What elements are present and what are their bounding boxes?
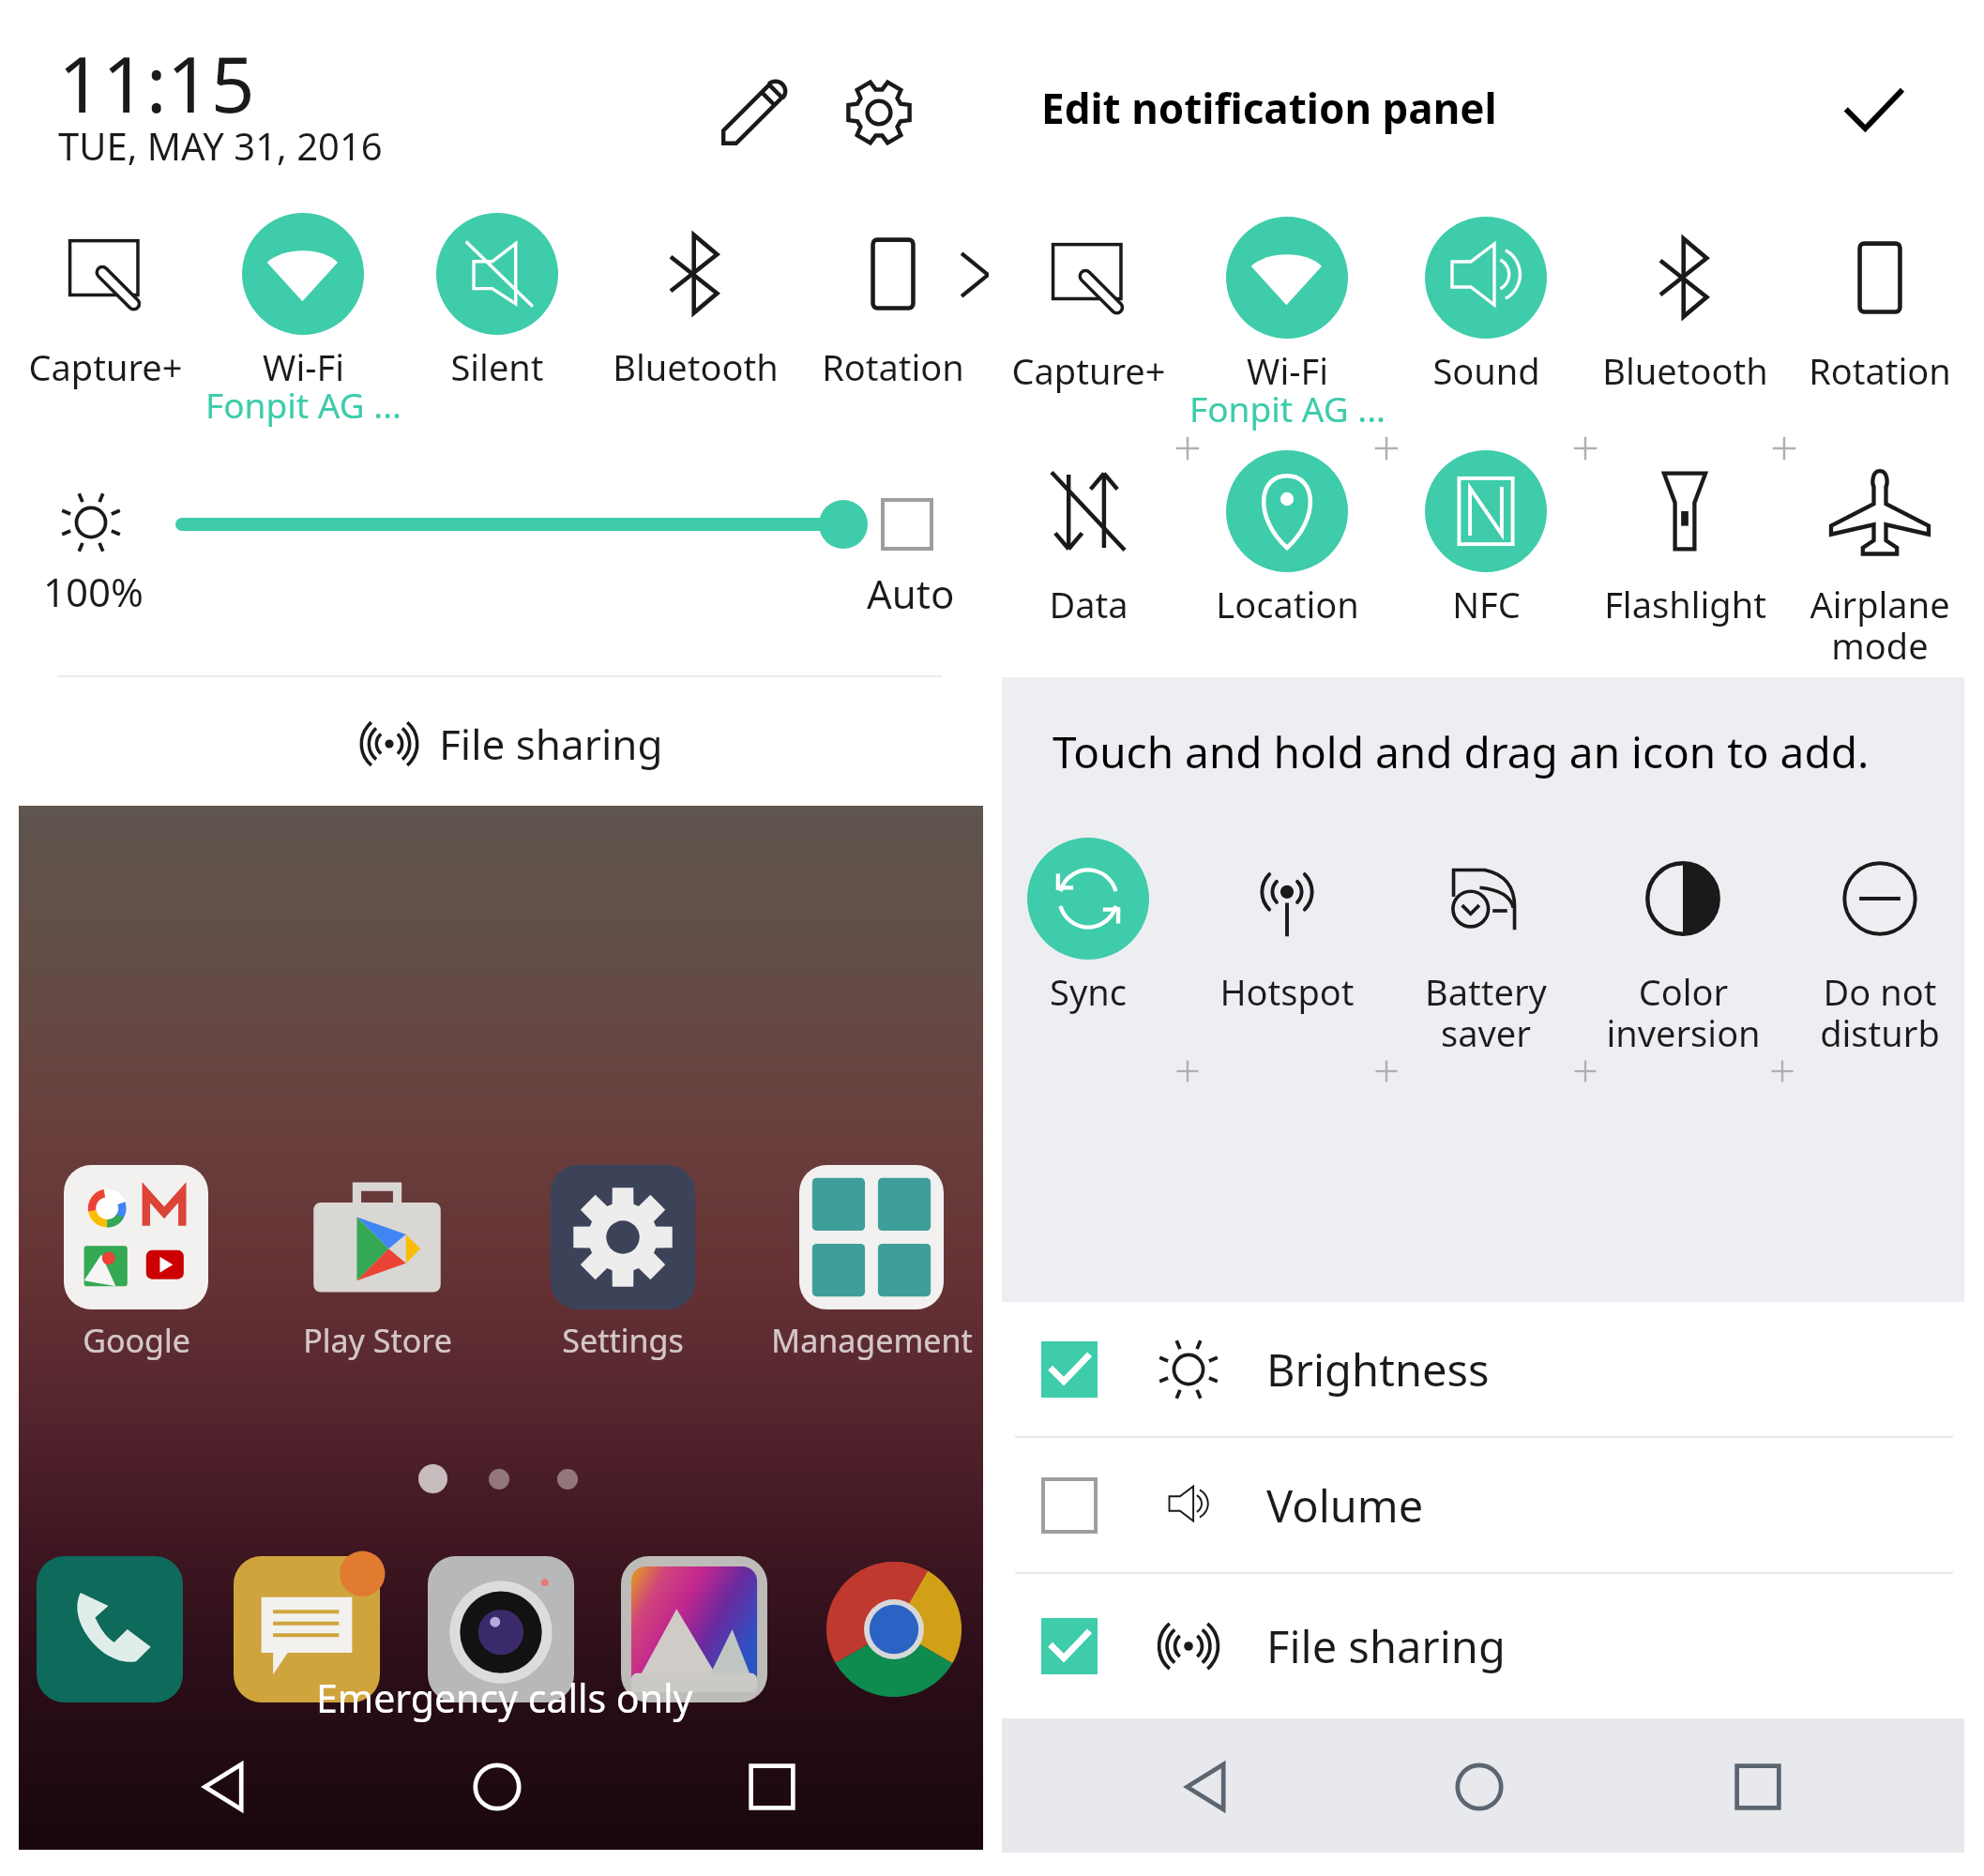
button[interactable]: Home	[1439, 1747, 1520, 1827]
staticText: Fonpit AG ...	[205, 381, 401, 428]
button[interactable]: Back	[1167, 1747, 1248, 1827]
staticText: Management	[771, 1319, 973, 1362]
button[interactable]: Done	[1833, 71, 1914, 152]
button[interactable]: Silent	[356, 213, 638, 391]
staticText: Rotation	[1809, 346, 1951, 395]
button[interactable]: Auto brightness	[881, 498, 933, 551]
staticText: Data	[1049, 580, 1128, 628]
staticText: Edit notification panel	[1041, 80, 1497, 136]
button[interactable]: Wi-Fi	[1146, 217, 1428, 442]
button[interactable]: Rotation	[1739, 217, 1984, 395]
button[interactable]: Do not disturb	[1739, 838, 1984, 1057]
staticText: Do not disturb	[1820, 967, 1940, 1057]
staticText: Rotation	[822, 342, 964, 391]
button[interactable]: Camera	[428, 1556, 574, 1702]
button[interactable]: Expand quick settings	[938, 239, 1009, 310]
button[interactable]: File sharing	[356, 708, 663, 779]
button[interactable]: Wi-Fi	[162, 213, 444, 438]
staticText: Location	[1216, 580, 1359, 628]
button[interactable]: Volume	[989, 1437, 1978, 1573]
staticText: Volume	[1266, 1475, 1424, 1536]
staticText: Auto	[867, 567, 955, 620]
staticText: File sharing	[439, 716, 663, 772]
staticText: Sync	[1050, 967, 1127, 1016]
button[interactable]: Bluetooth	[554, 213, 836, 391]
staticText: Settings	[562, 1319, 684, 1362]
staticText: Hotspot	[1219, 967, 1355, 1016]
button[interactable]: Chrome	[821, 1556, 967, 1702]
button[interactable]: Phone	[37, 1556, 183, 1702]
button[interactable]: Recents	[732, 1747, 812, 1827]
staticText: Flashlight	[1604, 580, 1766, 628]
button[interactable]: File sharing	[989, 1573, 1978, 1719]
button[interactable]: Management	[703, 1165, 1040, 1362]
button[interactable]: Sync	[947, 838, 1229, 1016]
button[interactable]: Gallery	[621, 1556, 767, 1702]
button[interactable]: Recents	[1718, 1747, 1798, 1827]
button[interactable]: Messages	[234, 1556, 380, 1702]
staticText: Google	[83, 1319, 190, 1362]
button[interactable]: Brightness	[989, 1302, 1978, 1437]
staticText: Play Store	[303, 1319, 452, 1362]
button[interactable]: Play Store	[208, 1165, 546, 1362]
staticText: Capture+	[1011, 346, 1166, 395]
button[interactable]: Capture+	[0, 213, 246, 391]
button[interactable]: Google	[0, 1165, 305, 1362]
button[interactable]: Sound	[1345, 217, 1627, 395]
button[interactable]: Flashlight	[1544, 450, 1825, 628]
staticText: Emergency calls only	[316, 1672, 693, 1724]
button[interactable]: Data	[947, 450, 1229, 628]
staticText: File sharing	[1266, 1616, 1506, 1676]
staticText: TUE, MAY 31, 2016	[58, 120, 383, 171]
button[interactable]: Settings	[454, 1165, 792, 1362]
staticText: Fonpit AG ...	[1189, 385, 1386, 431]
staticText: Wi-Fi	[263, 342, 344, 391]
button[interactable]: NFC	[1345, 450, 1627, 628]
button[interactable]: Rotation	[752, 213, 1034, 391]
button[interactable]: Location	[1146, 450, 1428, 628]
staticText: Touch and hold and drag an icon to add.	[1053, 722, 1870, 781]
button[interactable]: Home	[457, 1747, 538, 1827]
staticText: Capture+	[28, 342, 183, 391]
button[interactable]: Capture+	[947, 217, 1229, 395]
staticText: Wi-Fi	[1247, 346, 1328, 395]
button[interactable]: Airplane mode	[1739, 450, 1984, 670]
staticText: Sound	[1432, 346, 1540, 395]
staticText: Bluetooth	[1602, 346, 1768, 395]
button[interactable]: Hotspot	[1146, 838, 1428, 1016]
button[interactable]: Back	[185, 1747, 265, 1827]
button[interactable]: Edit	[717, 75, 792, 150]
staticText: Silent	[450, 342, 544, 391]
staticText: Battery saver	[1425, 967, 1547, 1057]
staticText: Color inversion	[1606, 967, 1761, 1057]
staticText: Brightness	[1266, 1339, 1490, 1399]
staticText: NFC	[1452, 580, 1521, 628]
button[interactable]: Settings	[841, 75, 916, 150]
button[interactable]: Color inversion	[1542, 838, 1824, 1057]
staticText: 11:15	[58, 30, 255, 135]
button[interactable]: Battery saver	[1345, 838, 1627, 1057]
staticText: Bluetooth	[613, 342, 779, 391]
staticText: Airplane mode	[1810, 580, 1950, 670]
button[interactable]: Bluetooth	[1544, 217, 1825, 395]
staticText: 100%	[43, 565, 144, 618]
